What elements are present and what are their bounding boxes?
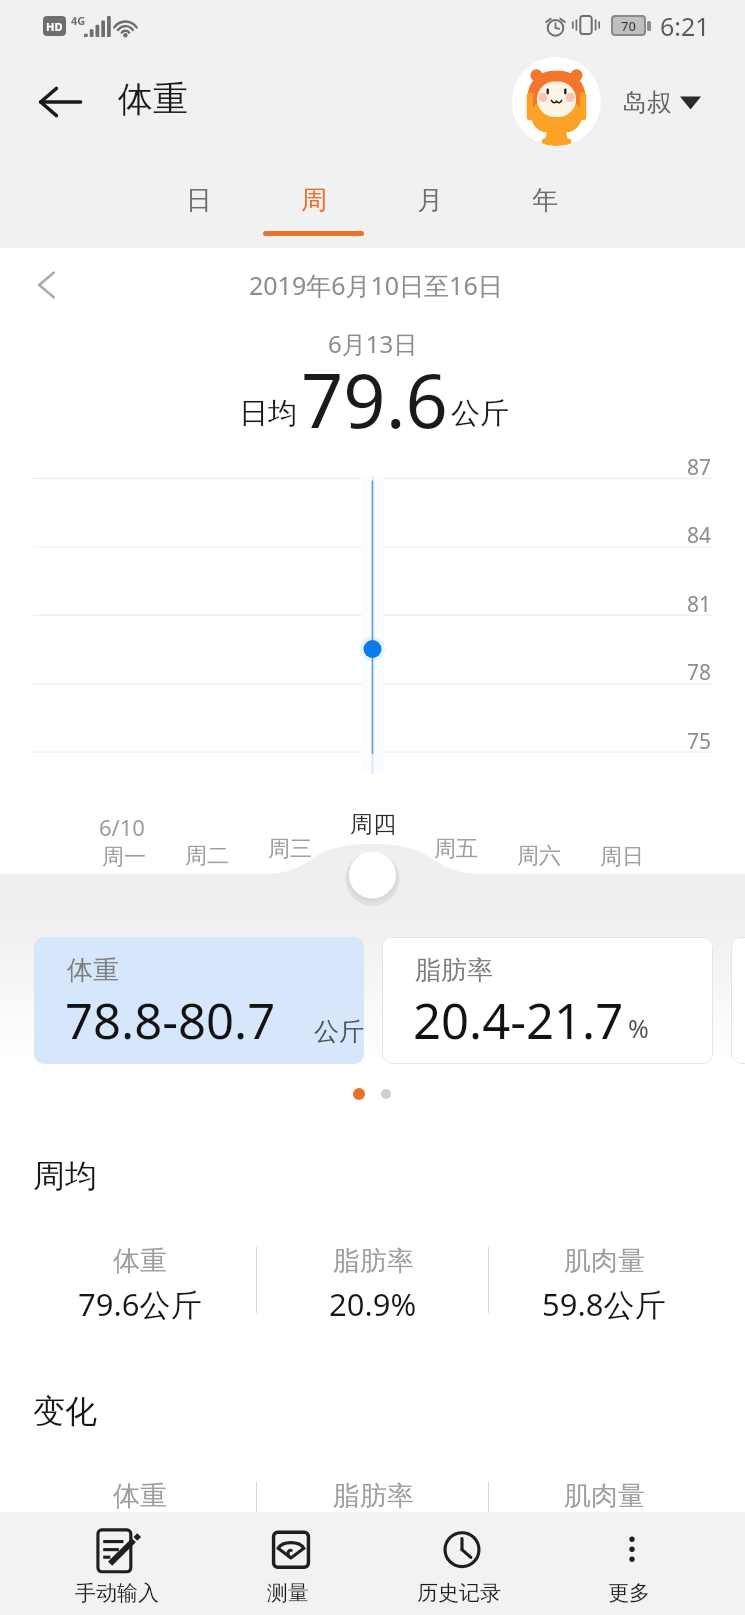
staticText: 79.6公斤 — [78, 1283, 202, 1321]
staticText: 78 — [687, 658, 712, 687]
staticText: 体重 — [67, 954, 119, 987]
staticText: 日 — [186, 184, 212, 217]
button[interactable]: 日 — [141, 166, 255, 250]
staticText: 历史记录 — [417, 1580, 501, 1606]
staticText: 测量 — [267, 1580, 309, 1606]
button[interactable]: 周三 — [250, 831, 330, 867]
button[interactable]: 体重 — [34, 937, 364, 1064]
button[interactable]: Profile picture — [512, 57, 601, 146]
staticText: 公斤 — [314, 1016, 364, 1047]
staticText: 20.9% — [329, 1283, 417, 1321]
staticText: 体重 — [113, 1244, 167, 1278]
button[interactable]: 肌肉量 — [494, 1478, 714, 1556]
staticText: 体重 — [118, 77, 188, 121]
staticText: 6:21 — [660, 9, 710, 43]
button[interactable]: 肌肉量 — [731, 937, 745, 1064]
staticText: 59.8公斤 — [542, 1283, 666, 1321]
button[interactable]: 脂肪率 — [263, 1243, 483, 1321]
staticText: 周均 — [33, 1156, 97, 1196]
staticText: 4G — [71, 13, 86, 28]
button[interactable]: 体重 — [30, 1478, 250, 1556]
button[interactable]: 手动输入 — [32, 1512, 202, 1615]
button[interactable]: 周一 — [84, 839, 164, 875]
button[interactable]: 年 — [487, 166, 601, 250]
staticText: 周二 — [185, 842, 229, 870]
button[interactable]: 脂肪率 — [263, 1478, 483, 1556]
staticText: 日均 — [239, 395, 297, 432]
staticText: 78.8-80.7 — [65, 987, 276, 1054]
staticText: 脂肪率 — [415, 954, 493, 987]
button[interactable]: 周六 — [499, 838, 579, 874]
staticText: 6/10 — [99, 812, 145, 842]
button[interactable]: 更多 — [544, 1512, 714, 1615]
button[interactable]: 周二 — [167, 838, 247, 874]
button[interactable]: 月 — [372, 166, 486, 250]
staticText: 脂肪率 — [333, 1479, 414, 1513]
staticText: 周三 — [268, 835, 312, 863]
button[interactable]: Previous week — [18, 256, 76, 314]
button[interactable]: 岛叔 — [622, 76, 701, 128]
staticText: % — [628, 1011, 649, 1045]
staticText: 体重 — [113, 1479, 167, 1513]
staticText: 周六 — [517, 842, 561, 870]
staticText: 75 — [687, 727, 712, 756]
button[interactable]: Back — [26, 68, 94, 136]
button[interactable]: 脂肪率 — [382, 937, 713, 1064]
staticText: 周 — [301, 184, 327, 217]
button[interactable]: 历史记录 — [374, 1512, 544, 1615]
button[interactable]: 周五 — [416, 831, 496, 867]
staticText: 公斤 — [451, 395, 509, 432]
staticText: 周日 — [600, 843, 644, 871]
button[interactable]: 周四 — [333, 807, 413, 841]
button[interactable]: 肌肉量 — [494, 1243, 714, 1321]
staticText: 6月13日 — [328, 327, 418, 360]
staticText: 20.4-21.7 — [413, 987, 624, 1054]
staticText: 月 — [417, 184, 443, 217]
button[interactable]: 周日 — [582, 839, 662, 875]
button[interactable]: 周 — [256, 166, 370, 250]
staticText: 84 — [687, 521, 712, 550]
staticText: 变化 — [33, 1391, 97, 1431]
staticText: 肌肉量 — [564, 1479, 645, 1513]
staticText: 87 — [687, 453, 712, 482]
button[interactable]: 体重 — [30, 1243, 250, 1321]
staticText: 更多 — [608, 1580, 650, 1606]
staticText: HD — [46, 19, 63, 34]
staticText: 年 — [532, 184, 558, 217]
button[interactable]: 测量 — [203, 1512, 373, 1615]
staticText: 岛叔 — [622, 87, 672, 118]
staticText: 周四 — [350, 810, 396, 839]
staticText: 70 — [621, 17, 636, 34]
staticText: 81 — [687, 590, 712, 619]
staticText: 脂肪率 — [333, 1244, 414, 1278]
staticText: 周一 — [102, 843, 146, 871]
staticText: 肌肉量 — [564, 1244, 645, 1278]
staticText: 周五 — [434, 835, 478, 863]
staticText: 2019年6月10日至16日 — [249, 268, 503, 302]
staticText: 79.6 — [301, 349, 448, 450]
staticText: 手动输入 — [75, 1580, 159, 1606]
